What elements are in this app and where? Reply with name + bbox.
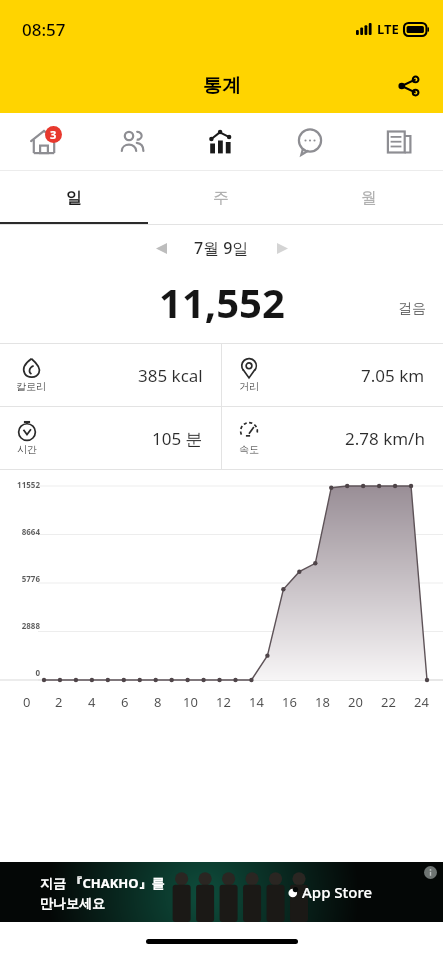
staticText: 8664 [2,526,40,537]
staticText: 22 [381,693,396,711]
button[interactable]: 칼로리 [0,344,221,406]
staticText: 2888 [2,620,40,631]
staticText: 18 [315,693,330,711]
button[interactable]: 7월 9일 [194,237,249,259]
button[interactable]: Next day [265,231,299,265]
button[interactable]: Board [354,113,443,170]
staticText: 거리 [239,380,259,393]
staticText: 3 [50,127,57,142]
button[interactable]: Friends [88,113,176,170]
button[interactable]: Previous day [144,231,178,265]
staticText: 11,552 [159,275,285,329]
staticText: 월 [361,188,377,208]
staticText: 만나보세요 [40,895,105,911]
button[interactable]: Chat [265,113,354,170]
button[interactable]: Statistics [176,113,265,170]
staticText: 2.78 km/h [345,427,425,450]
button[interactable]: 주 [147,171,295,225]
staticText: 일 [66,188,82,208]
staticText: 2 [55,693,63,711]
button[interactable]: Home [0,113,88,170]
staticText: 시간 [17,443,37,456]
staticText: 105 분 [152,427,203,450]
staticText: App Store [302,882,373,902]
staticText: 지금 『CHAKHO』를 [40,874,165,892]
staticText: 7.05 km [361,364,425,387]
button[interactable]: 일 [0,171,147,225]
staticText: 걸음 [398,300,426,318]
staticText: 통계 [203,74,241,98]
staticText: 20 [348,693,363,711]
button[interactable]: Share [389,66,429,106]
button[interactable]: 속도 [222,407,443,469]
staticText: 11552 [2,479,40,490]
staticText: 385 kcal [138,364,203,387]
staticText: 24 [414,693,429,711]
staticText: 6 [121,693,129,711]
staticText: 속도 [239,443,259,456]
button[interactable]: 시간 [0,407,221,469]
staticText: 5776 [2,573,40,584]
staticText: 주 [213,188,229,208]
staticText: 0 [2,667,40,678]
staticText: 8 [154,693,162,711]
button[interactable]: 지금 『CHAKHO』를 [0,862,443,922]
staticText: 16 [282,693,297,711]
staticText: 08:57 [22,18,66,41]
staticText: 0 [23,693,31,711]
staticText: LTE [377,20,399,38]
button[interactable]: 월 [295,171,443,225]
staticText: 12 [216,693,231,711]
staticText: 10 [183,693,198,711]
staticText: 칼로리 [16,380,46,393]
button[interactable]: 거리 [222,344,443,406]
staticText: 14 [249,693,264,711]
staticText: 4 [88,693,96,711]
